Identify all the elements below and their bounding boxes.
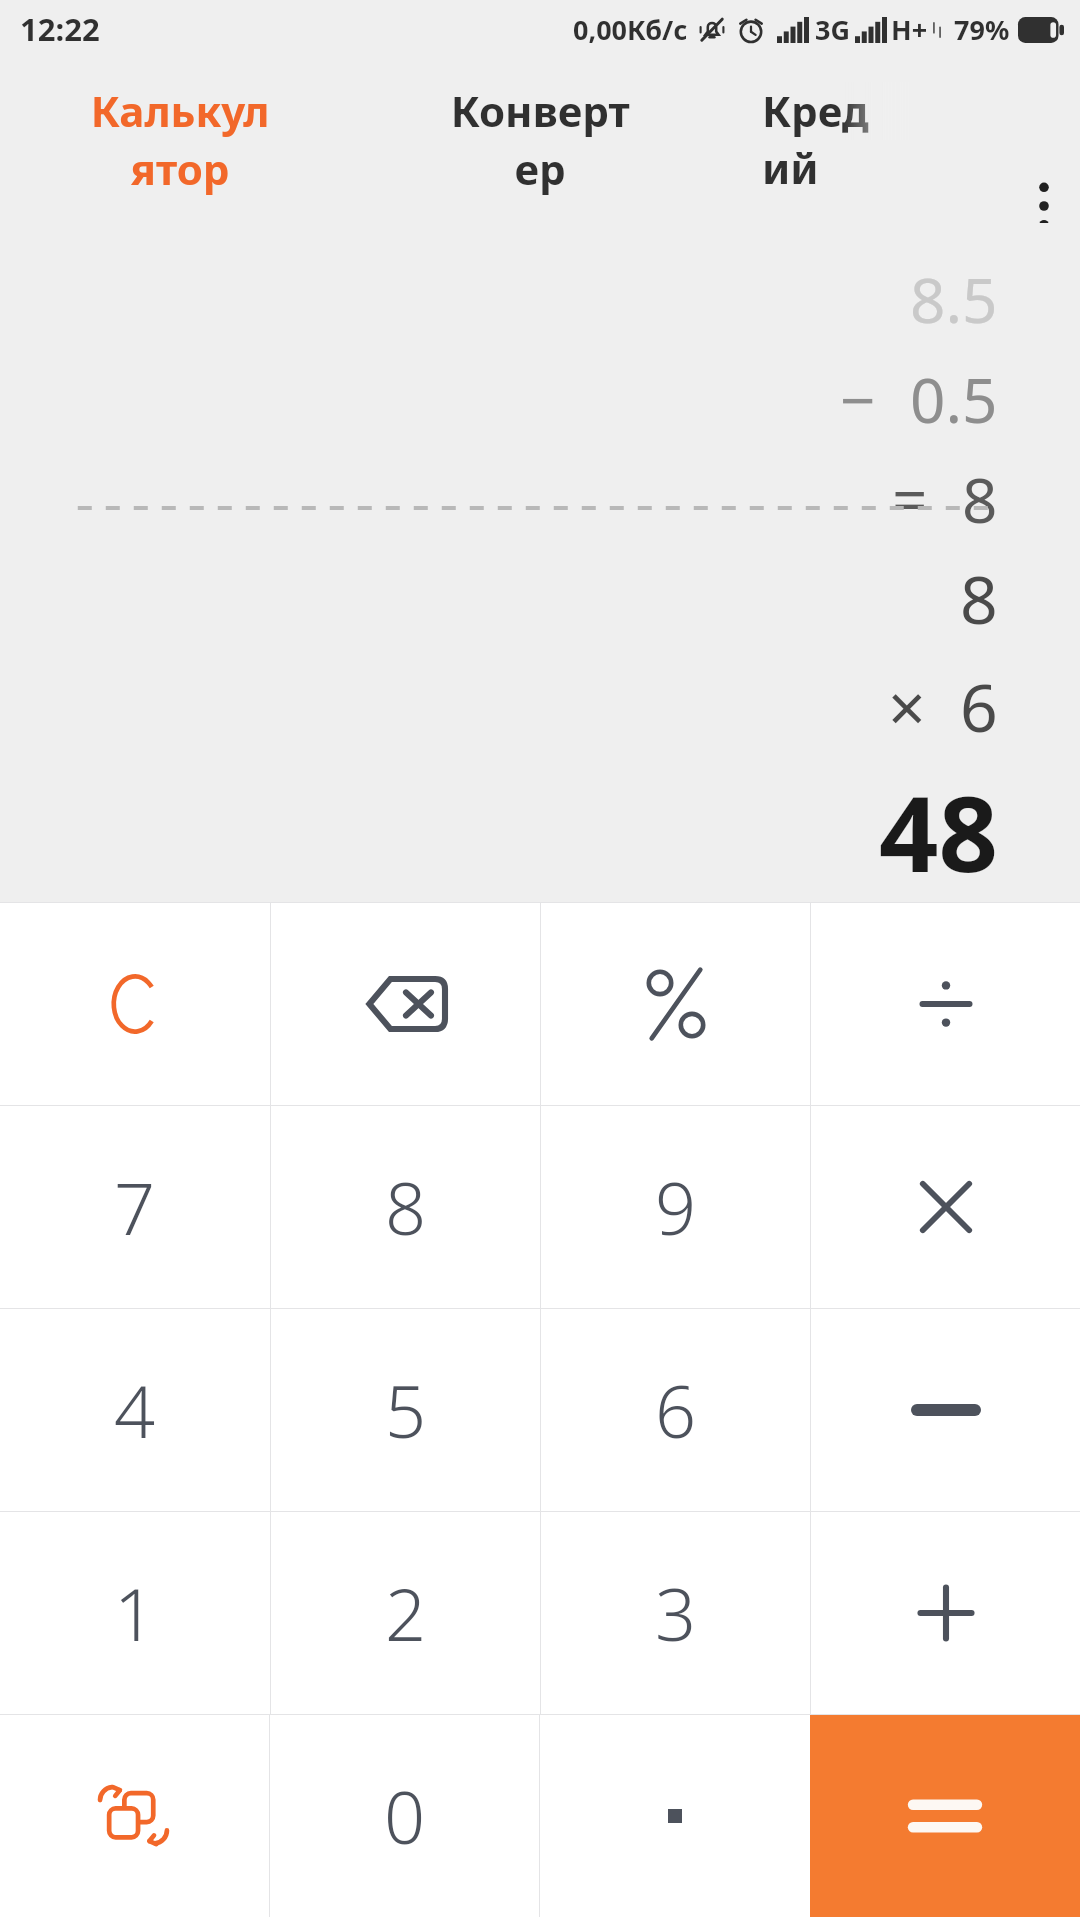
button[interactable]: Clear [0, 903, 270, 1105]
button[interactable]: 7 [0, 1106, 270, 1308]
button[interactable]: 1 [0, 1512, 270, 1714]
button[interactable]: 6 [541, 1309, 810, 1511]
staticText: 8 [962, 457, 998, 541]
staticText: Конвертер [445, 82, 635, 197]
button[interactable]: Decimal point [540, 1715, 810, 1917]
button[interactable]: More options [1022, 170, 1066, 242]
button[interactable]: Конвертер [360, 58, 720, 223]
staticText: 0.5 [910, 357, 998, 441]
button[interactable]: Equals [810, 1715, 1080, 1917]
staticText: Кред [762, 82, 869, 139]
button[interactable]: Percent [541, 903, 810, 1105]
staticText: − [840, 357, 876, 441]
staticText: 1 [114, 1564, 156, 1662]
staticText: 79% [954, 11, 1010, 48]
button[interactable]: Plus [811, 1512, 1080, 1714]
button[interactable]: Калькулятор [0, 58, 360, 223]
button[interactable]: 8.5 [0, 223, 1080, 902]
staticText: = [892, 457, 928, 541]
staticText: 48 [879, 761, 998, 903]
staticText: × [888, 661, 926, 751]
staticText: 2 [385, 1564, 427, 1662]
staticText: 0 [384, 1767, 426, 1865]
button[interactable]: 9 [541, 1106, 810, 1308]
button[interactable]: Multiply [811, 1106, 1080, 1308]
button[interactable]: Backspace [271, 903, 540, 1105]
staticText: ий [762, 139, 819, 196]
button[interactable]: 5 [271, 1309, 540, 1511]
button[interactable]: 2 [271, 1512, 540, 1714]
staticText: H+ [891, 11, 928, 48]
staticText: Калькулятор [85, 82, 275, 197]
button[interactable]: Divide [811, 903, 1080, 1105]
staticText: 7 [114, 1158, 156, 1256]
staticText: 9 [655, 1158, 697, 1256]
staticText: 3 [655, 1564, 697, 1662]
staticText: 8.5 [910, 257, 998, 341]
button[interactable]: Swap operands [0, 1715, 269, 1917]
staticText: 0,00Кб/c [573, 11, 688, 48]
staticText: 3G [815, 11, 850, 48]
staticText: 6 [655, 1361, 697, 1459]
button[interactable]: 0 [270, 1715, 539, 1917]
staticText: 8 [960, 553, 998, 643]
staticText: 6 [960, 661, 998, 751]
button[interactable]: Кред [720, 58, 1080, 223]
button[interactable]: 8 [271, 1106, 540, 1308]
button[interactable]: 4 [0, 1309, 270, 1511]
staticText: 12:22 [20, 8, 100, 50]
staticText: 4 [114, 1361, 156, 1459]
staticText: 8 [385, 1158, 427, 1256]
staticText: 5 [385, 1361, 427, 1459]
button[interactable]: 3 [541, 1512, 810, 1714]
button[interactable]: Minus [811, 1309, 1080, 1511]
